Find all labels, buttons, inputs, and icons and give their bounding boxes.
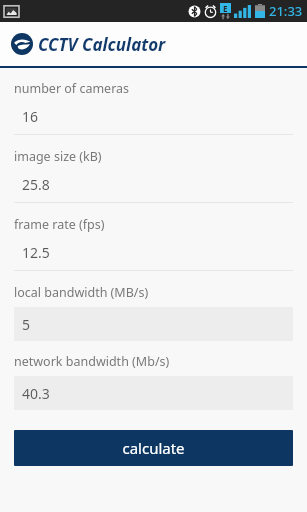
button[interactable]: network bandwidth (Mb/s): [0, 353, 307, 422]
staticText: 40.3: [22, 384, 50, 403]
staticText: number of cameras: [14, 80, 130, 97]
button[interactable]: CCTV Calculator: [0, 22, 307, 66]
staticText: 5: [22, 315, 31, 334]
button[interactable]: image size (kB): [0, 148, 307, 216]
button[interactable]: frame rate (fps): [0, 216, 307, 284]
button[interactable]: number of cameras: [0, 80, 307, 148]
staticText: frame rate (fps): [14, 216, 105, 233]
staticText: calculate: [122, 438, 185, 458]
staticText: 21:33: [269, 2, 303, 20]
staticText: 12.5: [22, 243, 50, 262]
button[interactable]: calculate: [14, 430, 293, 466]
staticText: image size (kB): [14, 148, 102, 165]
staticText: local bandwidth (MB/s): [14, 284, 149, 301]
staticText: 25.8: [22, 175, 50, 194]
staticText: E: [223, 3, 228, 13]
button[interactable]: local bandwidth (MB/s): [0, 284, 307, 353]
staticText: CCTV Calculator: [38, 33, 166, 56]
staticText: network bandwidth (Mb/s): [14, 353, 170, 370]
staticText: 16: [22, 107, 39, 126]
